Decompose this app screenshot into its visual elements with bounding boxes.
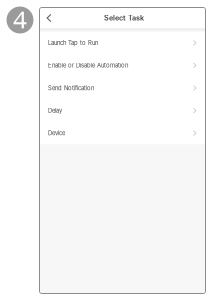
button[interactable]: Launch Tap to Run [40,31,205,54]
staticText: Send Notification [48,84,94,92]
staticText: Enable or Disable Automation [48,62,128,69]
button[interactable]: Device [40,122,205,144]
staticText: Launch Tap to Run [48,39,98,46]
button[interactable]: Enable or Disable Automation [40,54,205,77]
button[interactable]: Delay [40,99,205,122]
button[interactable]: Back [41,8,56,28]
staticText: Select Task [104,14,144,22]
button[interactable]: Send Notification [40,77,205,99]
staticText: Delay [48,107,62,114]
staticText: Device [48,130,65,137]
